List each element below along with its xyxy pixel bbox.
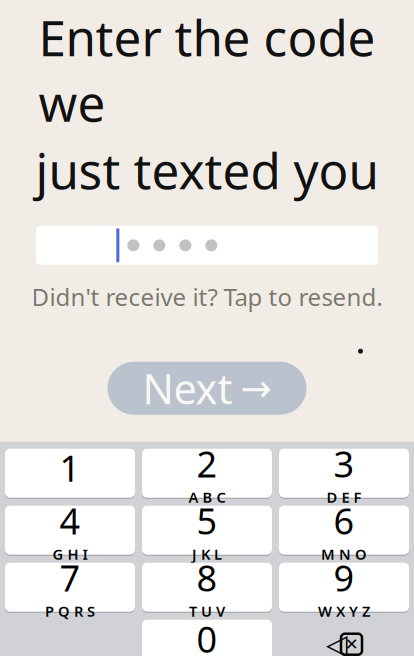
button[interactable]: 0: [142, 619, 272, 656]
staticText: P Q R S: [45, 601, 95, 621]
staticText: M N O: [321, 544, 367, 564]
staticText: 2: [196, 440, 217, 487]
button[interactable]: 1: [5, 448, 135, 499]
staticText: 9: [333, 554, 354, 601]
button[interactable]: [0, 226, 414, 265]
staticText: T U V: [189, 601, 225, 621]
staticText: just texted you: [35, 137, 378, 203]
staticText: A B C: [188, 487, 225, 507]
button[interactable]: Delete: [279, 620, 409, 656]
staticText: ◁: [326, 628, 348, 656]
button[interactable]: 2: [142, 448, 272, 499]
button[interactable]: 9: [279, 562, 409, 613]
staticText: →: [240, 367, 271, 409]
staticText: 8: [196, 554, 217, 601]
staticText: Didn't receive it? Tap to resend.: [31, 281, 382, 313]
staticText: W X Y Z: [318, 601, 370, 621]
staticText: Enter the code we: [38, 4, 375, 135]
staticText: 4: [59, 497, 80, 544]
button[interactable]: 7: [5, 562, 135, 613]
staticText: G H I: [52, 544, 87, 564]
staticText: 1: [59, 444, 80, 492]
button[interactable]: Didn't receive it? Tap to resend.: [21, 277, 392, 317]
button[interactable]: 8: [142, 562, 272, 613]
staticText: D E F: [326, 487, 361, 507]
staticText: ✕: [345, 635, 358, 653]
staticText: 7: [59, 554, 80, 601]
staticText: Next: [142, 361, 232, 416]
staticText: J K L: [192, 544, 222, 564]
staticText: 3: [333, 440, 354, 487]
button[interactable]: 5: [142, 505, 272, 556]
button[interactable]: 3: [279, 448, 409, 499]
button[interactable]: 4: [5, 505, 135, 556]
button[interactable]: Next: [107, 362, 306, 415]
staticText: 5: [196, 497, 217, 544]
staticText: 6: [333, 497, 354, 544]
staticText: 0: [196, 615, 217, 656]
button[interactable]: 6: [279, 505, 409, 556]
